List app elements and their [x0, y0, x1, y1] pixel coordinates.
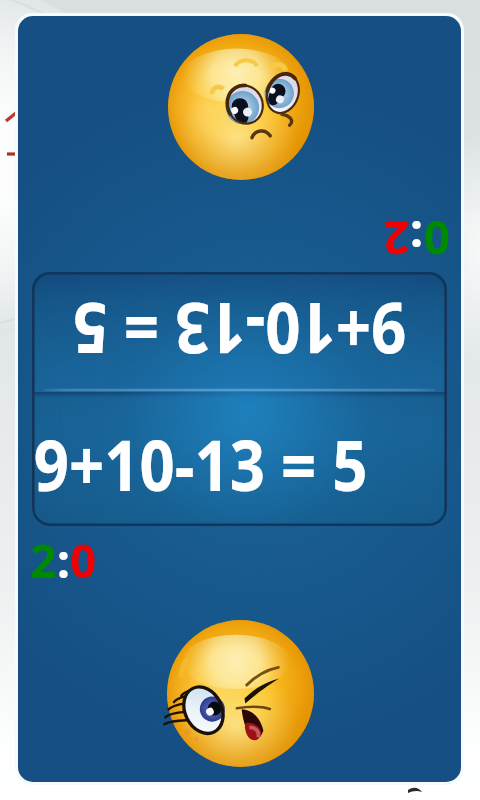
- staticText: 9+10-13 = 5: [72, 283, 406, 378]
- staticText: 9+10-13 = 5: [34, 416, 368, 511]
- button[interactable]: Opponent avatar: [168, 34, 314, 180]
- staticText: :: [410, 207, 423, 270]
- button[interactable]: Your avatar: [167, 620, 314, 767]
- staticText: 2: [383, 207, 410, 270]
- button[interactable]: 9+10-13 = 5: [32, 272, 447, 392]
- button[interactable]: 9+10-13 = 5: [32, 392, 447, 526]
- staticText: 0: [70, 529, 97, 592]
- staticText: 0: [423, 207, 450, 270]
- button[interactable]: 2: [30, 529, 97, 592]
- button[interactable]: 0: [383, 207, 450, 270]
- staticText: 2: [30, 529, 57, 592]
- staticText: :: [57, 529, 70, 592]
